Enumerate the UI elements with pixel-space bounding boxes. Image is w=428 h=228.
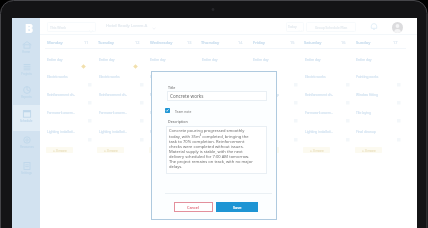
button[interactable]: Projects [13, 61, 40, 79]
staticText: + 3 more [156, 148, 170, 152]
button[interactable]: Cancel [174, 202, 213, 212]
button[interactable]: + 3 more [355, 147, 382, 153]
staticText: Entire day [150, 57, 166, 61]
button[interactable]: Notifications [368, 21, 380, 33]
button[interactable]: Final cleanup [354, 123, 406, 141]
staticText: Entire day [202, 57, 218, 61]
staticText: + 3 more [362, 148, 376, 152]
button[interactable]: Electric works [97, 68, 149, 86]
staticText: Entire day [253, 57, 269, 61]
button[interactable]: + 3 more [303, 147, 330, 153]
staticText: Lighting installati.. [47, 130, 75, 134]
button[interactable]: Concrete works [167, 91, 267, 101]
button[interactable]: + 3 more [97, 147, 124, 153]
button[interactable]: Lighting installati.. [303, 123, 355, 141]
staticText: Title [168, 85, 176, 90]
staticText: Electric works [99, 75, 120, 79]
staticText: 15 [290, 40, 295, 45]
staticText: Resources [20, 145, 34, 149]
button[interactable]: Electric works [200, 68, 252, 86]
button[interactable]: Tile laying [354, 104, 406, 122]
staticText: Tuesday [98, 40, 114, 45]
button[interactable]: Entire day [251, 50, 303, 68]
button[interactable]: + 3 more [200, 147, 227, 153]
button[interactable]: Entire day [148, 50, 200, 68]
button[interactable]: + 3 more [149, 147, 176, 153]
staticText: Concrete works [170, 93, 204, 99]
button[interactable]: Masonry work [148, 86, 200, 104]
button[interactable]: This Week [47, 22, 96, 32]
button[interactable]: Brand logo [23, 20, 35, 33]
staticText: 16 [341, 40, 346, 45]
button[interactable]: Formwork assem.. [45, 104, 97, 122]
staticText: Monday [47, 40, 63, 45]
button[interactable]: Lighting installati.. [97, 123, 149, 141]
button[interactable]: Team note [165, 106, 211, 115]
staticText: Painting works [356, 75, 379, 79]
button[interactable]: Today [286, 22, 304, 32]
staticText: Lighting installati.. [99, 130, 127, 134]
button[interactable]: Reinforcement ch.. [200, 86, 252, 104]
button[interactable]: Window fitting [354, 86, 406, 104]
button[interactable]: Reports [13, 84, 40, 102]
staticText: Formwork assem.. [305, 111, 333, 115]
button[interactable]: Scaffolding setup [251, 86, 303, 104]
button[interactable]: Save [216, 202, 258, 212]
button[interactable]: Electric works [45, 68, 97, 86]
staticText: Lighting installati.. [305, 130, 333, 134]
staticText: Sunday [356, 40, 371, 45]
staticText: Masonry work [150, 93, 172, 97]
staticText: Schedule [20, 119, 33, 123]
staticText: Safety briefing [253, 130, 275, 134]
button[interactable]: Schedule [13, 108, 40, 126]
button[interactable]: Concrete pouring progressed smoothly tod… [166, 126, 267, 174]
button[interactable]: Entire day [303, 50, 355, 68]
button[interactable]: Entire day [354, 50, 406, 68]
button[interactable]: Reinforcement ch.. [45, 86, 97, 104]
staticText: 11 [84, 40, 89, 45]
button[interactable]: Settings [13, 160, 40, 178]
button[interactable]: Entire day [45, 50, 97, 68]
button[interactable]: Home [13, 39, 40, 57]
button[interactable]: Entire day [97, 50, 149, 68]
staticText: Team note [175, 109, 192, 113]
button[interactable]: Group Schedule Plan [306, 22, 356, 32]
button[interactable]: + 3 more [46, 147, 73, 153]
button[interactable]: Profile [392, 22, 403, 33]
button[interactable]: Safety briefing [251, 123, 303, 141]
button[interactable]: Electric works [303, 68, 355, 86]
button[interactable]: Reinforcement ch.. [97, 86, 149, 104]
button[interactable]: Concrete works [148, 68, 200, 86]
button[interactable]: Concrete works [251, 68, 303, 86]
button[interactable]: + 3 more [252, 147, 279, 153]
staticText: Thursday [201, 40, 220, 45]
button[interactable]: Resources [13, 134, 40, 152]
staticText: Entire day [47, 57, 63, 61]
staticText: + 3 more [207, 148, 221, 152]
staticText: This Week [50, 25, 67, 30]
staticText: Group Schedule Plan [315, 25, 348, 29]
staticText: 17 [393, 40, 398, 45]
staticText: Cancel [187, 205, 200, 210]
staticText: Reinforcement ch.. [202, 93, 231, 97]
button[interactable]: Steel delivery [251, 104, 303, 122]
button[interactable]: Painting works [354, 68, 406, 86]
button[interactable]: Formwork assem.. [97, 104, 149, 122]
button[interactable]: Formwork assem.. [303, 104, 355, 122]
button[interactable]: Lighting installati.. [45, 123, 97, 141]
button[interactable]: Plumbing rough-in [148, 123, 200, 141]
button[interactable]: Reinforcement ch.. [303, 86, 355, 104]
staticText: Electric works [305, 75, 326, 79]
staticText: + 3 more [259, 148, 273, 152]
staticText: Formwork assem.. [99, 111, 127, 115]
staticText: Scaffolding setup [253, 93, 279, 97]
staticText: Tile laying [356, 111, 372, 115]
staticText: B [25, 20, 34, 33]
button[interactable]: Site inspection [148, 104, 200, 122]
button[interactable]: Lighting installati.. [200, 123, 252, 141]
staticText: Reinforcement ch.. [305, 93, 334, 97]
staticText: Entire day [356, 57, 372, 61]
button[interactable]: Entire day [200, 50, 252, 68]
